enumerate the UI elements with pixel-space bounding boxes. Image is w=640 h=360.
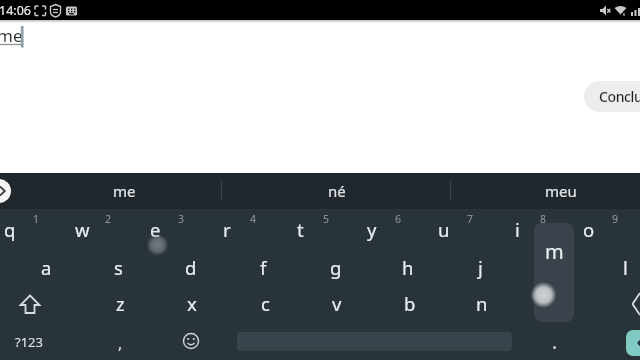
button[interactable] [626,330,640,356]
staticText: i [515,217,520,242]
button[interactable]: h [373,249,443,285]
button[interactable]: t [265,211,335,247]
staticText: . [552,329,558,355]
staticText: r [223,217,231,242]
button[interactable]: y [337,211,407,247]
staticText: c [261,291,270,316]
button[interactable]: v [302,285,372,321]
staticText: 8 [540,212,547,226]
staticText: n [476,291,488,316]
button[interactable]: f [228,249,298,285]
staticText: g [330,255,342,280]
staticText: b [404,291,416,316]
staticText: 14:06 [0,2,31,19]
button[interactable]: a [11,249,81,285]
button[interactable]: Concluído [584,81,640,112]
staticText: , [118,332,123,354]
button[interactable] [620,285,640,321]
button[interactable]: k [518,249,588,285]
button[interactable]: z [85,285,155,321]
button[interactable]: d [156,249,226,285]
staticText: 3 [178,212,185,226]
staticText: 2 [105,212,112,226]
staticText: d [185,255,197,280]
staticText: me [0,24,23,47]
staticText: v [332,291,342,316]
staticText: Concluído [599,87,640,106]
button[interactable]: né [277,174,397,208]
staticText: ?123 [15,333,43,351]
button[interactable]: w [47,211,117,247]
button[interactable]: i [482,211,552,247]
staticText: 7 [467,212,474,226]
button[interactable]: o [554,211,624,247]
button[interactable] [8,285,52,321]
staticText: e [150,217,161,242]
staticText: k [548,255,558,280]
button[interactable]: l [590,249,640,285]
staticText: 4 [250,212,257,226]
button[interactable]: x [157,285,227,321]
staticText: a [41,255,52,280]
staticText: o [583,217,595,242]
staticText: x [187,291,197,316]
button[interactable]: r [192,211,262,247]
staticText: 1 [33,212,40,226]
staticText: né [328,181,346,201]
button[interactable]: q [0,211,45,247]
staticText: 5 [323,212,330,226]
staticText: j [478,255,483,280]
button[interactable]: c [230,285,300,321]
button[interactable]: ?123 [1,325,57,359]
staticText: m [545,238,564,265]
button[interactable]: n [447,285,517,321]
button[interactable]: s [83,249,153,285]
staticText: t [297,217,304,242]
button[interactable]: . [520,324,590,360]
staticText: l [623,255,628,280]
staticText: s [114,255,123,280]
staticText: q [4,217,16,242]
button[interactable]: j [445,249,515,285]
button[interactable]: u [409,211,479,247]
staticText: w [75,217,90,242]
staticText: z [116,291,125,316]
staticText: u [438,217,450,242]
button[interactable] [0,179,11,203]
staticText: me [113,181,136,201]
button[interactable]: b [375,285,445,321]
staticText: y [367,217,377,242]
staticText: meu [545,181,577,201]
button[interactable]: e [120,211,190,247]
button[interactable]: meu [501,174,621,208]
button[interactable]: , [85,325,155,360]
staticText: f [260,255,267,280]
button[interactable]: me [64,174,184,208]
staticText: 9 [612,212,619,226]
staticText: 6 [395,212,402,226]
staticText: h [402,255,414,280]
button[interactable] [174,324,208,358]
button[interactable]: g [301,249,371,285]
